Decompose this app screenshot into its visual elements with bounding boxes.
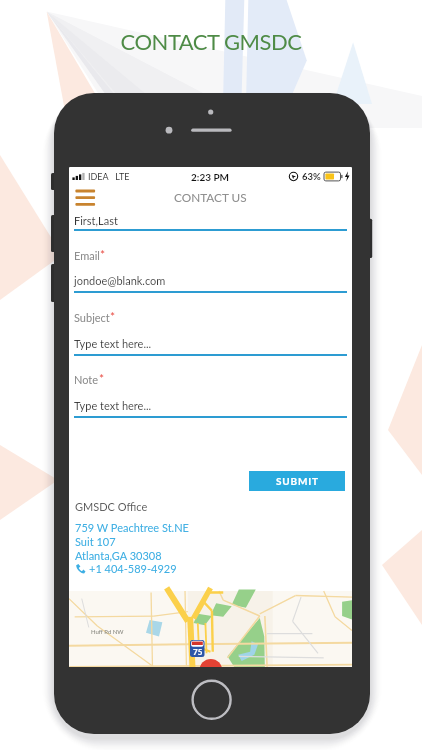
staticText: Note	[74, 373, 99, 386]
button[interactable]: SUBMIT	[249, 471, 345, 491]
staticText: CONTACT GMSDC	[0, 28, 422, 54]
staticText: Type text here...	[74, 399, 152, 412]
button[interactable]: +1 404-589-4929	[75, 562, 177, 575]
staticText: Suit 107	[75, 535, 116, 548]
button[interactable]: Map of GMSDC office location	[69, 591, 352, 667]
staticText: +1 404-589-4929	[89, 562, 177, 575]
staticText: Type text here...	[74, 337, 152, 350]
staticText: SUBMIT	[276, 475, 319, 487]
staticText: Atlanta,GA 30308	[75, 549, 162, 562]
button[interactable]: 759 W Peachtree St.NE	[75, 521, 189, 562]
staticText: First,Last	[74, 214, 118, 227]
staticText: jondoe@blank.com	[74, 274, 166, 287]
staticText: Email	[74, 249, 100, 262]
staticText: Subject	[74, 311, 110, 324]
button[interactable]: Open navigation menu	[73, 186, 97, 210]
staticText: IDEA LTE	[88, 171, 130, 182]
staticText: CONTACT US	[174, 190, 247, 204]
staticText: GMSDC Office	[75, 500, 148, 513]
staticText: *	[99, 371, 105, 385]
staticText: 63%	[302, 171, 321, 182]
staticText: *	[100, 247, 106, 261]
staticText: 759 W Peachtree St.NE	[75, 521, 189, 534]
staticText: Huff Rd NW	[91, 628, 124, 635]
staticText: *	[110, 309, 116, 323]
staticText: 75	[193, 647, 203, 657]
staticText: 2:23 PM	[191, 171, 230, 183]
